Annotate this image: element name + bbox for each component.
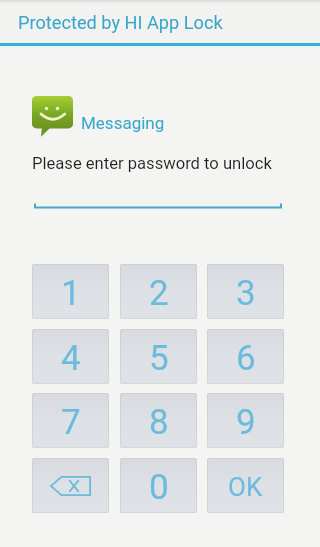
staticText: 2 [149,273,169,314]
button[interactable]: 8 [120,393,197,448]
staticText: Protected by HI App Lock [18,12,223,33]
button[interactable]: Backspace [32,458,109,513]
staticText: 6 [236,338,256,379]
button[interactable]: 2 [120,264,197,319]
staticText: 1 [61,273,81,314]
staticText: Please enter password to unlock [32,154,272,173]
staticText: 4 [61,338,81,379]
button[interactable]: 9 [207,393,284,448]
button[interactable]: 0 [120,458,197,513]
staticText: 5 [149,338,169,379]
button[interactable]: 1 [32,264,109,319]
staticText: 3 [236,273,256,314]
staticText: Messaging [81,113,165,133]
button[interactable]: 7 [32,393,109,448]
staticText: 9 [236,402,256,443]
staticText: 7 [61,402,81,443]
button[interactable]: 5 [120,329,197,384]
staticText: 0 [149,467,169,508]
staticText: OK [228,472,263,502]
staticText: 8 [149,402,169,443]
button[interactable]: 4 [32,329,109,384]
button[interactable]: 6 [207,329,284,384]
button[interactable]: OK [207,458,284,513]
button[interactable]: 3 [207,264,284,319]
